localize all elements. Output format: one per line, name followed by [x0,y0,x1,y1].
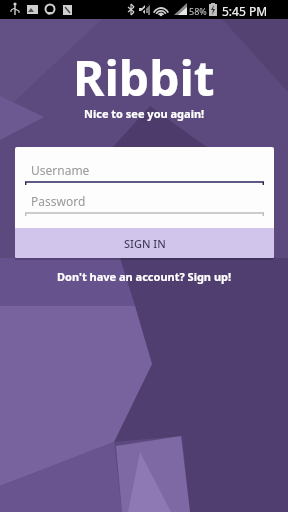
staticText: Ribbit [73,45,215,110]
staticText: Nice to see you again! [84,106,205,121]
staticText: Password [31,193,86,209]
button[interactable]: Don't have an account? Sign up! [57,269,232,284]
button[interactable]: SIGN IN [15,228,274,258]
staticText: 58% [189,5,207,17]
staticText: Username [31,162,90,178]
staticText: 5:45 PM [222,3,268,19]
button[interactable]: Password [25,185,264,216]
staticText: SIGN IN [124,236,166,251]
button[interactable]: Username [25,147,264,185]
